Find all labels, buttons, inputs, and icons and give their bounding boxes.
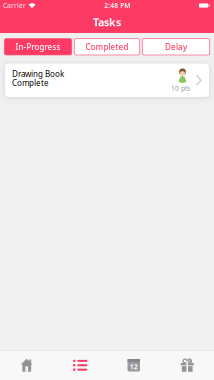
button[interactable]: In-Progress bbox=[4, 39, 72, 55]
staticText: Carrier bbox=[3, 1, 26, 10]
staticText: In-Progress bbox=[15, 41, 60, 52]
staticText: Tasks bbox=[93, 15, 121, 29]
staticText: Delay bbox=[165, 41, 187, 52]
staticText: Complete bbox=[12, 78, 49, 88]
button[interactable]: Rewards bbox=[160, 350, 214, 380]
staticText: Drawing Book bbox=[12, 69, 64, 79]
button[interactable]: Completed bbox=[74, 39, 140, 55]
staticText: 2:48 PM bbox=[104, 1, 130, 10]
button[interactable]: Home bbox=[0, 350, 53, 380]
button[interactable]: Drawing Book bbox=[5, 63, 209, 97]
staticText: 12 bbox=[130, 362, 138, 371]
staticText: 10 pts bbox=[171, 84, 190, 93]
staticText: Completed bbox=[85, 41, 128, 52]
button[interactable]: Tasks bbox=[53, 350, 107, 380]
button[interactable]: Calendar bbox=[107, 350, 160, 380]
button[interactable]: Delay bbox=[142, 39, 210, 55]
